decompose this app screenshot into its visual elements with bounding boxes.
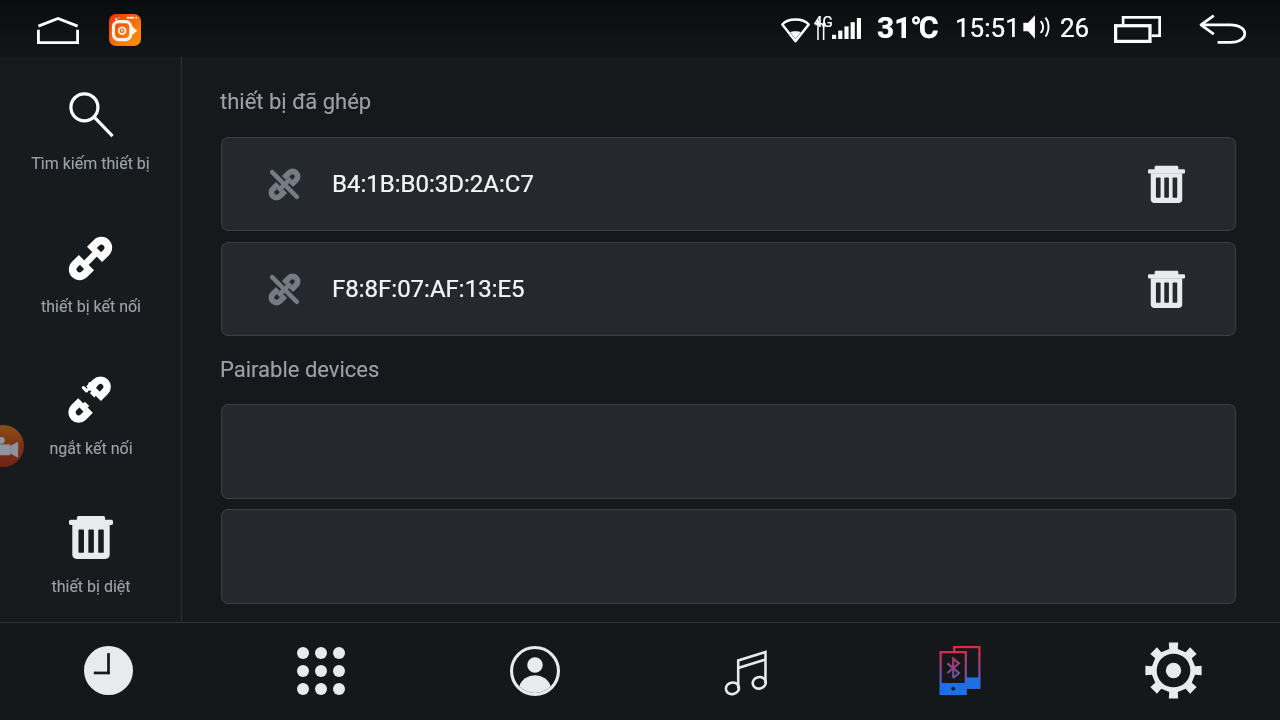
button[interactable]: Back [1192,8,1256,50]
button[interactable]: Profile [482,623,588,720]
staticText: B4:1B:B0:3D:2A:C7 [332,170,534,198]
staticText: F8:8F:07:AF:13:E5 [332,275,525,303]
button[interactable]: Tìm kiếm thiết bị [0,92,181,173]
button[interactable]: Screen recorder app [109,14,141,46]
button[interactable]: Delete paired device [1135,153,1197,215]
button[interactable]: Bluetooth [907,623,1013,720]
button[interactable]: Settings [1120,623,1226,720]
button[interactable]: Screen recorder bubble [0,425,24,467]
staticText: thiết bị đã ghép [220,89,372,115]
button[interactable]: F8:8F:07:AF:13:E5 [221,242,1236,336]
staticText: Pairable devices [220,357,380,383]
staticText: ngắt kết nối [49,439,133,458]
button[interactable] [221,509,1236,604]
button[interactable]: thiết bị diệt [0,515,181,596]
staticText: 4G [814,13,833,31]
staticText: Tìm kiếm thiết bị [31,154,150,173]
button[interactable]: Delete paired device [1135,258,1197,320]
button[interactable]: All apps [268,623,374,720]
button[interactable]: Recent apps [1102,9,1172,49]
staticText: thiết bị kết nối [41,297,141,316]
staticText: 26 [1060,13,1090,43]
staticText: 15:51 [955,13,1020,43]
staticText: thiết bị diệt [51,577,131,596]
button[interactable]: Music [694,623,800,720]
button[interactable]: Home [28,8,88,52]
button[interactable]: Clock [55,623,161,720]
staticText: 31℃ [877,10,939,45]
button[interactable]: ngắt kết nối [0,374,181,458]
button[interactable]: B4:1B:B0:3D:2A:C7 [221,137,1236,231]
button[interactable] [221,404,1236,499]
button[interactable]: thiết bị kết nối [0,232,181,316]
